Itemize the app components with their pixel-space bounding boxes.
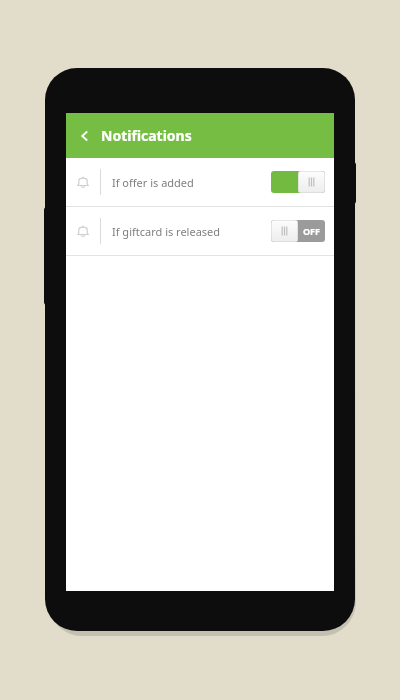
button[interactable]: Toggle on: [271, 171, 325, 193]
button[interactable]: Toggle off: [271, 220, 325, 242]
staticText: Notifications: [101, 126, 192, 145]
staticText: If giftcard is released: [112, 224, 271, 239]
staticText: If offer is added: [112, 175, 271, 190]
button[interactable]: If offer is added: [66, 158, 334, 206]
button[interactable]: Back: [72, 123, 98, 149]
button[interactable]: If giftcard is released: [66, 207, 334, 255]
staticText: OFF: [303, 225, 321, 237]
